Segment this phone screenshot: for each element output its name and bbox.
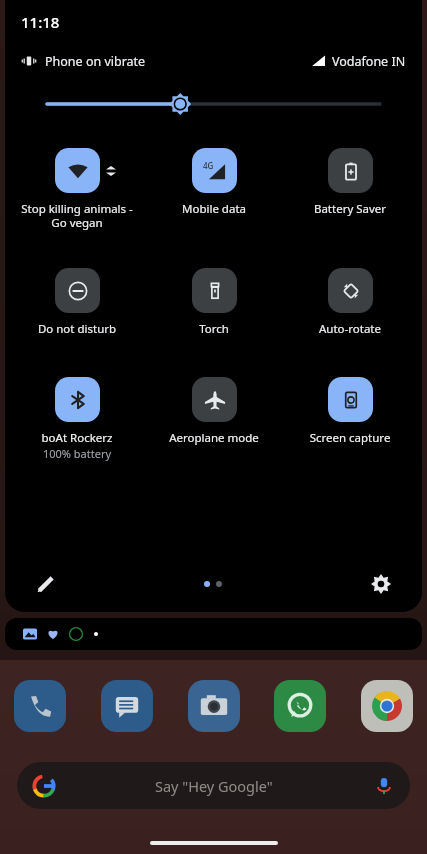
staticText: Battery Saver [287, 201, 413, 217]
staticText: 11:18 [21, 12, 60, 32]
staticText: Say "Hey Google" [155, 776, 273, 796]
button[interactable]: Do not disturb [12, 268, 142, 337]
staticText: 4G [203, 160, 214, 171]
staticText: 100% battery [14, 446, 140, 461]
button[interactable]: Camera [188, 680, 240, 732]
staticText: Stop killing animals - Go vegan [14, 201, 140, 230]
button[interactable]: Messages [101, 680, 153, 732]
button[interactable]: Torch [149, 268, 279, 337]
button[interactable]: Auto-rotate [285, 268, 415, 337]
button[interactable]: Chrome [361, 680, 413, 732]
button[interactable]: Edit tiles [29, 567, 63, 601]
staticText: Phone on vibrate [45, 53, 146, 70]
staticText: Screen capture [287, 430, 413, 446]
button[interactable]: Battery Saver [285, 148, 415, 217]
button[interactable]: Settings [364, 567, 398, 601]
staticText: Torch [151, 321, 277, 337]
button[interactable]: Screen capture [285, 377, 415, 446]
staticText: Vodafone IN [332, 53, 406, 70]
button[interactable]: Say "Hey Google" [17, 762, 410, 809]
button[interactable]: Aeroplane mode [149, 377, 279, 446]
staticText: Mobile data [151, 201, 277, 217]
button[interactable]: 4G [149, 148, 279, 217]
button[interactable]: WhatsApp [274, 680, 326, 732]
button[interactable]: Stop killing animals - Go vegan [12, 148, 142, 230]
staticText: Do not disturb [14, 321, 140, 337]
staticText: boAt Rockerz [14, 430, 140, 446]
staticText: Aeroplane mode [151, 430, 277, 446]
button[interactable] [5, 618, 422, 650]
button[interactable]: Phone [14, 680, 66, 732]
button[interactable]: boAt Rockerz [12, 377, 142, 461]
staticText: Auto-rotate [287, 321, 413, 337]
button[interactable]: Brightness [47, 90, 380, 118]
